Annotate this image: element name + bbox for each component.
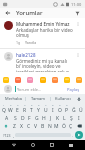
staticText: B [41,123,45,130]
button[interactable]: M [53,122,60,130]
button[interactable]: D [19,114,26,122]
button[interactable]: Back [4,9,12,17]
staticText: F [28,115,31,122]
button[interactable]: K [54,114,61,122]
button[interactable]: Z [11,122,18,130]
button[interactable]: L [61,114,68,122]
button[interactable]: I [75,114,82,122]
button[interactable]: Ş [68,114,75,122]
staticText: Ş [70,115,73,122]
button[interactable]: Emoji [27,77,33,83]
staticText: O [58,107,62,114]
staticText: 1 [3,103,5,106]
button[interactable]: P [63,106,70,114]
staticText: 8 [52,103,54,106]
button[interactable]: A [3,114,11,122]
staticText: 11:00 [71,2,82,7]
staticText: . [72,133,74,138]
staticText: Yorum ekle... [17,87,42,92]
button[interactable]: Emoji [15,77,21,83]
staticText: R [23,107,27,114]
button[interactable]: Muhammed Emin Yılmaz [0,18,85,48]
button[interactable]: J [47,114,54,122]
button[interactable]: S [11,114,19,122]
button[interactable]: More options [75,52,81,58]
button[interactable]: Comma [12,131,15,139]
button[interactable]: Ç [67,122,74,130]
staticText: V [34,123,38,130]
button[interactable]: Voice input [75,94,83,103]
staticText: Ç [69,123,73,130]
button[interactable]: H [40,114,47,122]
staticText: 1g [16,40,21,45]
staticText: A [5,115,9,122]
staticText: U [44,107,48,114]
button[interactable]: W [7,106,14,114]
button[interactable]: G [33,114,40,122]
button[interactable]: Kullanıcı [51,94,75,103]
button[interactable]: Y [35,106,42,114]
staticText: 0 [66,103,68,106]
button[interactable]: Emoji [64,77,70,83]
staticText: Görmediniz mi şu kanalı bi' inceleyin, v… [16,58,73,72]
button[interactable]: O [56,106,63,114]
button[interactable]: Period [71,131,74,139]
staticText: L [63,115,66,122]
button[interactable]: U [42,106,49,114]
button[interactable]: T [28,106,35,114]
staticText: N [48,123,52,130]
button[interactable]: X [18,122,25,130]
staticText: I [78,115,80,122]
button[interactable]: Paylaş [66,87,81,92]
button[interactable]: Merhaba [2,94,25,103]
button[interactable]: Keyboard [66,140,76,150]
staticText: Merhaba [5,96,22,101]
staticText: Ö [62,123,66,130]
staticText: 2 [10,103,12,106]
button[interactable]: I [49,106,56,114]
button[interactable]: Emoji [3,77,9,83]
button[interactable]: Q [1,106,7,114]
button[interactable]: Home [28,140,38,150]
staticText: Y [37,107,40,114]
button[interactable]: B [39,122,46,130]
button[interactable]: F [26,114,33,122]
staticText: M [54,123,59,130]
button[interactable]: Yanıtla [25,40,37,45]
button[interactable]: V [32,122,39,130]
button[interactable]: Shift [1,122,11,130]
button[interactable]: Recents [47,140,57,150]
staticText: Muhammed Emin Yılmaz [16,21,70,27]
staticText: Yorumlar [16,9,43,17]
button[interactable]: Emoji [52,77,58,83]
button[interactable]: More options [75,21,81,27]
button[interactable]: Send [75,131,83,139]
button[interactable]: Tamam [26,94,50,103]
button[interactable]: Sort [73,9,81,17]
staticText: G [35,115,39,122]
button[interactable]: E [14,106,21,114]
button[interactable]: Ö [60,122,67,130]
button[interactable]: Backspace [74,122,84,130]
staticText: , [13,133,15,138]
button[interactable]: N [46,122,53,130]
staticText: I [52,107,54,114]
staticText: D [21,115,25,122]
button[interactable]: Back [9,140,19,150]
button[interactable]: Ü [77,106,84,114]
button[interactable]: C [25,122,32,130]
button[interactable]: hale2128 [0,49,85,75]
button[interactable]: Yorum ekle... [15,86,66,92]
staticText: Ğ [72,107,76,114]
staticText: 6 [38,103,40,106]
staticText: Ü [79,107,83,114]
button[interactable]: R [21,106,28,114]
button[interactable]: Emoji [76,77,82,83]
staticText: hale2128 [16,52,36,58]
staticText: Q [2,107,6,114]
button[interactable]: Emoji [40,77,46,83]
staticText: Kullanıcı [55,96,71,101]
button[interactable]: ?123 [2,131,11,139]
button[interactable]: Ğ [70,106,77,114]
